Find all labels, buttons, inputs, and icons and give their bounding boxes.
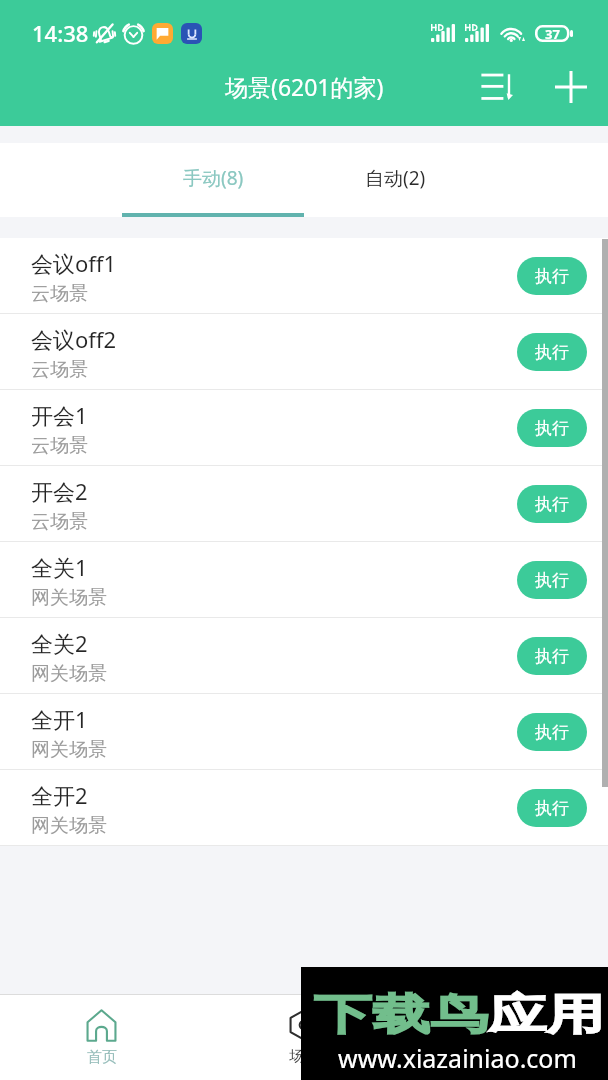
- staticText: 网关场景: [31, 738, 107, 762]
- staticText: 全关1: [31, 552, 88, 582]
- staticText: 执行: [535, 646, 569, 667]
- button[interactable]: 执行: [517, 485, 587, 523]
- staticText: 执行: [535, 418, 569, 439]
- button[interactable]: 会议off1: [0, 238, 608, 314]
- staticText: 37: [545, 25, 560, 42]
- staticText: 应用: [489, 989, 605, 1042]
- staticText: 云场景: [31, 510, 88, 534]
- button[interactable]: 全关1: [0, 542, 608, 618]
- staticText: 执行: [535, 570, 569, 591]
- staticText: 自动(2): [365, 165, 426, 191]
- staticText: 执行: [535, 722, 569, 743]
- button[interactable]: 自动(2): [304, 143, 486, 217]
- staticText: 全关2: [31, 628, 88, 658]
- button[interactable]: 开会1: [0, 390, 608, 466]
- button[interactable]: 执行: [517, 789, 587, 827]
- staticText: 执行: [535, 266, 569, 287]
- staticText: 手动(8): [183, 165, 244, 191]
- staticText: www.xiazainiao.com: [338, 1041, 577, 1075]
- staticText: 全开2: [31, 780, 88, 810]
- button[interactable]: 全关2: [0, 618, 608, 694]
- button[interactable]: 执行: [517, 257, 587, 295]
- staticText: 首页: [87, 1048, 117, 1067]
- staticText: 场景: [289, 1047, 319, 1066]
- button[interactable]: 执行: [517, 561, 587, 599]
- staticText: 网关场景: [31, 662, 107, 686]
- staticText: 开会1: [31, 400, 88, 430]
- staticText: 全开1: [31, 704, 88, 734]
- button[interactable]: 全开1: [0, 694, 608, 770]
- button[interactable]: 全开2: [0, 770, 608, 846]
- staticText: 云场景: [31, 358, 88, 382]
- staticText: 执行: [535, 342, 569, 363]
- staticText: 下载鸟: [314, 989, 489, 1042]
- staticText: 会议off1: [31, 248, 117, 278]
- button[interactable]: 执行: [517, 637, 587, 675]
- button[interactable]: 首页: [0, 995, 202, 1080]
- button[interactable]: Sort: [471, 61, 523, 113]
- staticText: 开会2: [31, 476, 88, 506]
- button[interactable]: Add: [545, 61, 597, 113]
- staticText: 我的: [492, 1047, 522, 1066]
- button[interactable]: 场景: [202, 995, 405, 1080]
- button[interactable]: 执行: [517, 409, 587, 447]
- button[interactable]: 手动(8): [122, 143, 304, 217]
- staticText: 14:38: [32, 18, 89, 48]
- button[interactable]: 我的: [405, 995, 608, 1080]
- staticText: 网关场景: [31, 586, 107, 610]
- staticText: 场景(6201的家): [225, 71, 384, 102]
- staticText: 云场景: [31, 434, 88, 458]
- button[interactable]: 会议off2: [0, 314, 608, 390]
- button[interactable]: 开会2: [0, 466, 608, 542]
- button[interactable]: 执行: [517, 713, 587, 751]
- staticText: 云场景: [31, 282, 88, 306]
- staticText: 执行: [535, 494, 569, 515]
- staticText: 会议off2: [31, 324, 117, 354]
- button[interactable]: 执行: [517, 333, 587, 371]
- staticText: 执行: [535, 798, 569, 819]
- staticText: 网关场景: [31, 814, 107, 838]
